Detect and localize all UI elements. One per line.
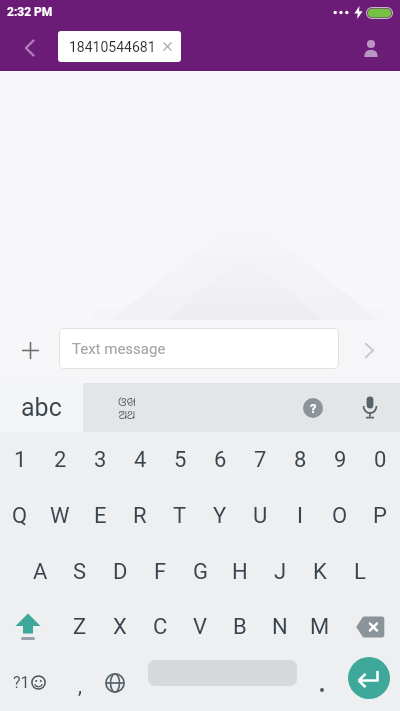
- button[interactable]: A: [20, 544, 60, 599]
- button[interactable]: Text message: [59, 328, 339, 369]
- staticText: 7: [254, 447, 267, 473]
- staticText: V: [193, 614, 208, 640]
- button[interactable]: [305, 654, 339, 711]
- button[interactable]: Z: [60, 599, 100, 654]
- button[interactable]: 9: [320, 432, 360, 487]
- staticText: Y: [213, 503, 227, 529]
- button[interactable]: [340, 599, 400, 654]
- staticText: B: [233, 614, 247, 640]
- staticText: Q: [12, 503, 28, 529]
- button[interactable]: C: [140, 599, 180, 654]
- staticText: L: [354, 559, 366, 585]
- button[interactable]: U: [240, 488, 280, 543]
- staticText: X: [113, 614, 127, 640]
- staticText: D: [113, 559, 128, 585]
- button[interactable]: B: [220, 599, 260, 654]
- button[interactable]: [350, 383, 390, 432]
- staticText: R: [133, 503, 147, 529]
- staticText: G: [193, 559, 208, 585]
- staticText: H: [232, 559, 248, 585]
- button[interactable]: ଓଖ ଅଥ: [107, 383, 147, 432]
- staticText: W: [50, 503, 70, 529]
- staticText: I: [297, 503, 303, 529]
- button[interactable]: [355, 32, 387, 64]
- staticText: E: [94, 503, 107, 529]
- button[interactable]: 1: [0, 432, 40, 487]
- button[interactable]: 3: [80, 432, 120, 487]
- button[interactable]: S: [60, 544, 100, 599]
- staticText: N: [272, 614, 288, 640]
- button[interactable]: P: [360, 488, 400, 543]
- staticText: 8: [294, 447, 307, 473]
- staticText: 2: [54, 447, 67, 473]
- staticText: 9: [334, 447, 347, 473]
- button[interactable]: 4: [120, 432, 160, 487]
- staticText: 2:32 PM: [7, 5, 53, 19]
- button[interactable]: abc: [0, 383, 83, 432]
- staticText: 3: [94, 447, 107, 473]
- staticText: T: [173, 503, 187, 529]
- button[interactable]: 18410544681: [58, 31, 181, 62]
- button[interactable]: ?1: [0, 654, 58, 711]
- button[interactable]: [348, 657, 390, 699]
- button[interactable]: 2: [40, 432, 80, 487]
- button[interactable]: [0, 24, 48, 71]
- staticText: M: [310, 614, 330, 640]
- button[interactable]: Y: [200, 488, 240, 543]
- button[interactable]: 7: [240, 432, 280, 487]
- staticText: Z: [73, 614, 87, 640]
- button[interactable]: H: [220, 544, 260, 599]
- button[interactable]: O: [320, 488, 360, 543]
- staticText: U: [253, 503, 268, 529]
- button[interactable]: E: [80, 488, 120, 543]
- button[interactable]: ,: [60, 654, 100, 711]
- button[interactable]: [8, 328, 52, 372]
- button[interactable]: ?: [303, 398, 323, 418]
- staticText: 1: [14, 447, 27, 473]
- staticText: F: [154, 559, 167, 585]
- button[interactable]: D: [100, 544, 140, 599]
- staticText: J: [274, 559, 287, 585]
- staticText: O: [332, 503, 348, 529]
- button[interactable]: T: [160, 488, 200, 543]
- staticText: 6: [214, 447, 227, 473]
- staticText: ,: [78, 674, 82, 697]
- staticText: P: [373, 503, 387, 529]
- staticText: 5: [174, 447, 187, 473]
- button[interactable]: K: [300, 544, 340, 599]
- staticText: ?1: [13, 673, 30, 692]
- staticText: 4: [134, 447, 147, 473]
- button[interactable]: X: [100, 599, 140, 654]
- button[interactable]: L: [340, 544, 380, 599]
- staticText: Text message: [72, 340, 166, 358]
- staticText: K: [313, 559, 327, 585]
- staticText: abc: [21, 393, 62, 422]
- staticText: 0: [374, 447, 387, 473]
- button[interactable]: 8: [280, 432, 320, 487]
- staticText: 18410544681: [69, 39, 156, 55]
- button[interactable]: Q: [0, 488, 40, 543]
- button[interactable]: 6: [200, 432, 240, 487]
- button[interactable]: I: [280, 488, 320, 543]
- staticText: ଓଖ ଅଥ: [118, 393, 136, 423]
- button[interactable]: [97, 654, 132, 711]
- staticText: ?: [310, 401, 317, 416]
- button[interactable]: M: [300, 599, 340, 654]
- button[interactable]: J: [260, 544, 300, 599]
- staticText: S: [73, 559, 87, 585]
- button[interactable]: W: [40, 488, 80, 543]
- button[interactable]: [0, 599, 56, 654]
- button[interactable]: F: [140, 544, 180, 599]
- button[interactable]: 0: [360, 432, 400, 487]
- button[interactable]: V: [180, 599, 220, 654]
- staticText: C: [153, 614, 168, 640]
- button[interactable]: R: [120, 488, 160, 543]
- button[interactable]: [347, 328, 391, 372]
- staticText: A: [33, 559, 48, 585]
- button[interactable]: G: [180, 544, 220, 599]
- button[interactable]: 5: [160, 432, 200, 487]
- button[interactable]: N: [260, 599, 300, 654]
